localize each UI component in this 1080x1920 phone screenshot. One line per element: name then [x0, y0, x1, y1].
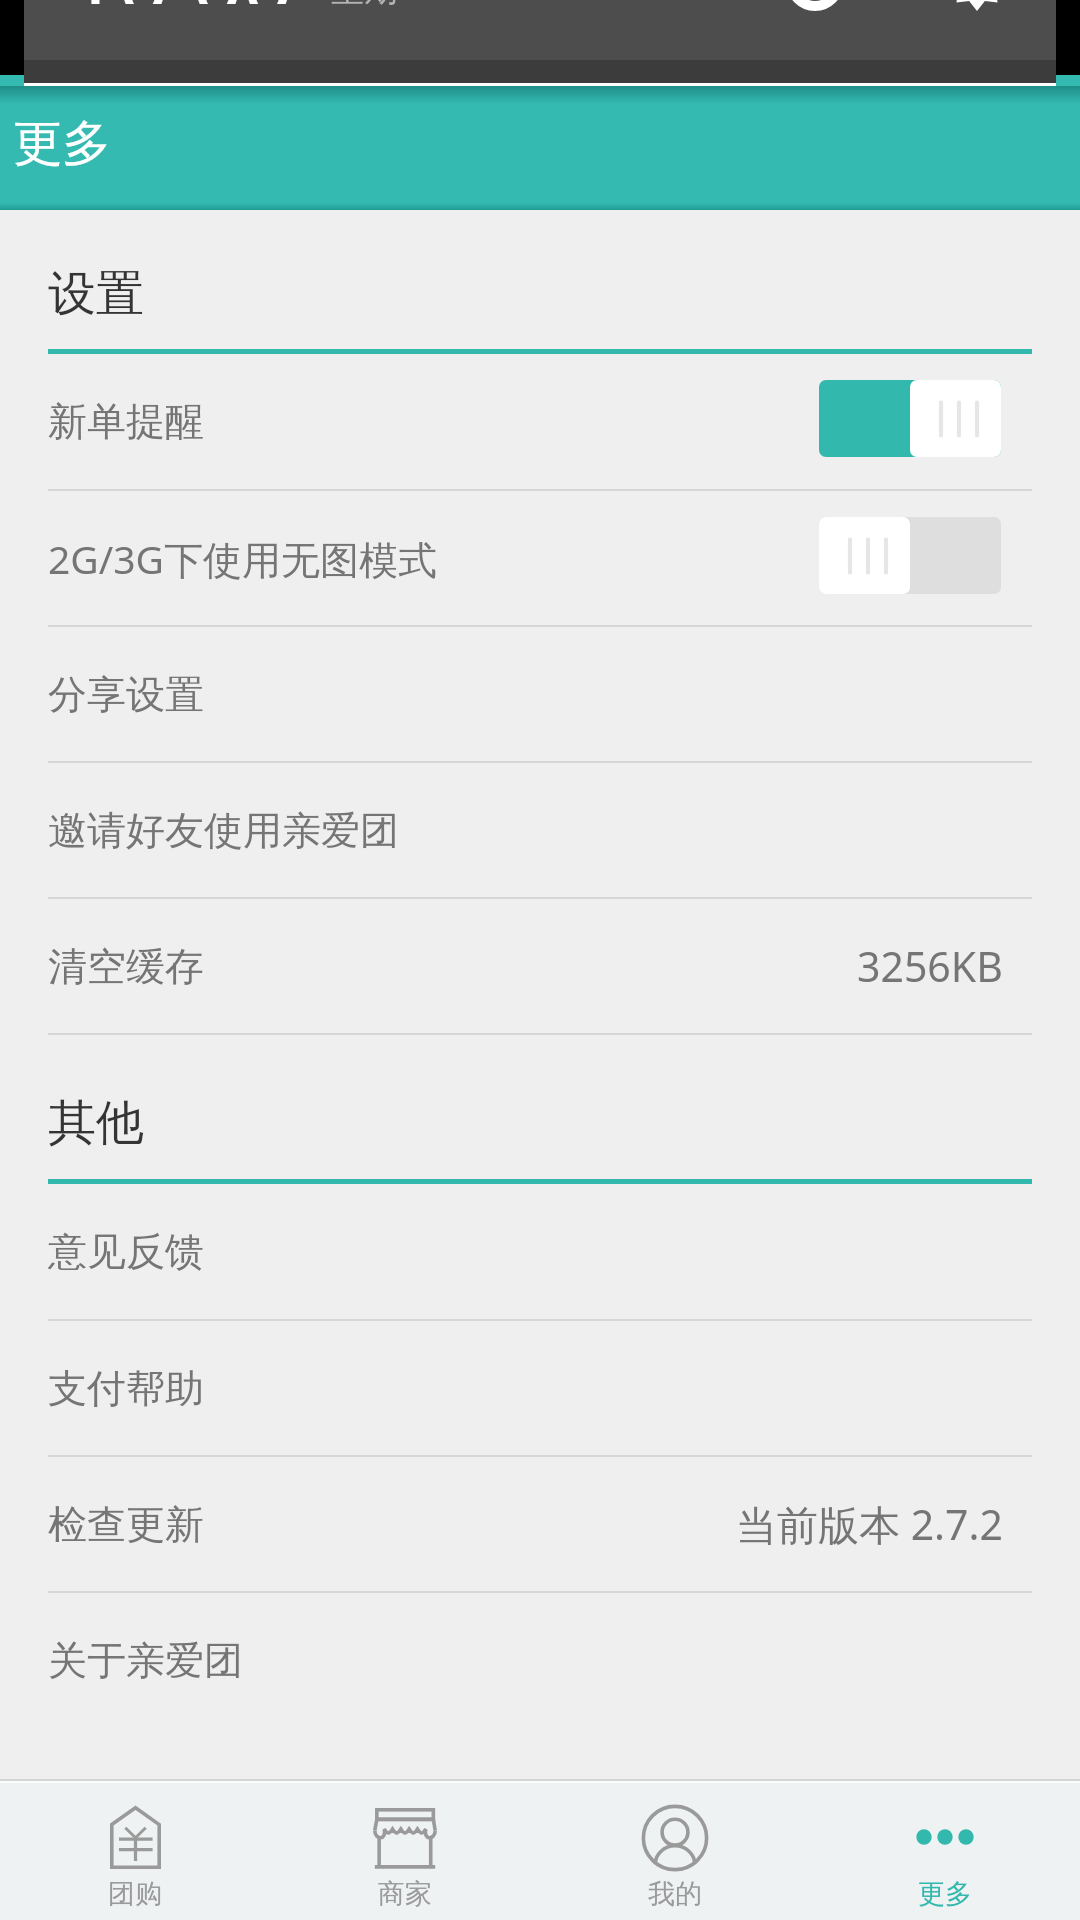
button[interactable]: 清空缓存: [0, 899, 1080, 1033]
staticText: 商家: [378, 1877, 432, 1911]
staticText: 其他: [48, 1093, 144, 1153]
staticText: 2G/3G下使用无图模式: [48, 532, 437, 585]
staticText: 检查更新: [48, 1500, 204, 1549]
button[interactable]: 新单提醒: [0, 354, 1080, 489]
staticText: 分享设置: [48, 670, 204, 719]
button[interactable]: 2G/3G下使用无图模式: [0, 491, 1080, 625]
staticText: 团购: [108, 1877, 162, 1911]
staticText: 新单提醒: [48, 397, 204, 446]
staticText: 3256KB: [857, 938, 1003, 994]
staticText: 10:00: [68, 0, 293, 4]
staticText: 支付帮助: [48, 1364, 204, 1413]
button[interactable]: 邀请好友使用亲爱团: [0, 763, 1080, 897]
staticText: 意见反馈: [48, 1227, 204, 1276]
staticText: 我的: [648, 1877, 702, 1911]
staticText: 设置: [48, 264, 144, 324]
button[interactable]: 意见反馈: [0, 1184, 1080, 1319]
button[interactable]: 更多: [810, 1783, 1080, 1920]
button[interactable]: 我的: [540, 1783, 810, 1920]
button[interactable]: Switch on: [819, 380, 1001, 457]
button[interactable]: 商家: [270, 1783, 540, 1920]
staticText: 邀请好友使用亲爱团: [48, 806, 399, 855]
button[interactable]: 关于亲爱团: [0, 1593, 1080, 1727]
staticText: 星期一: [330, 0, 432, 11]
button[interactable]: 支付帮助: [0, 1321, 1080, 1455]
button[interactable]: Switch off: [819, 517, 1001, 594]
staticText: 更多: [13, 113, 111, 175]
staticText: 更多: [918, 1877, 972, 1911]
staticText: 清空缓存: [48, 942, 204, 991]
button[interactable]: 检查更新: [0, 1457, 1080, 1591]
button[interactable]: 团购: [0, 1783, 270, 1920]
button[interactable]: 分享设置: [0, 627, 1080, 761]
staticText: 关于亲爱团: [48, 1636, 243, 1685]
staticText: 当前版本 2.7.2: [736, 1496, 1003, 1552]
